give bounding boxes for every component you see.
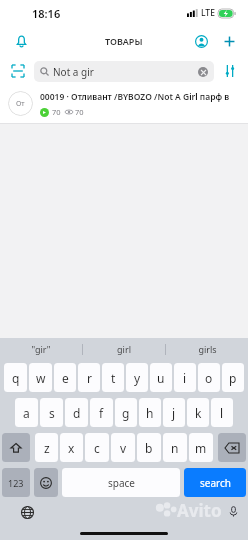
staticText: j [172, 405, 176, 421]
button[interactable]: Clear [198, 67, 208, 77]
button[interactable]: Filters [220, 61, 240, 81]
staticText: m [195, 440, 207, 456]
staticText: z [44, 440, 50, 456]
staticText: LTE [201, 7, 215, 19]
staticText: s [49, 405, 55, 421]
staticText: b [145, 440, 153, 456]
staticText: От [16, 99, 25, 109]
button[interactable]: Notifications [8, 28, 34, 54]
button[interactable]: Voice input [224, 502, 242, 520]
button[interactable]: girls [166, 338, 248, 360]
staticText: r [87, 370, 92, 386]
button[interactable]: v [111, 433, 135, 462]
button[interactable]: girl [83, 338, 165, 360]
button[interactable]: o [198, 363, 220, 392]
staticText: girl [117, 343, 131, 355]
staticText: 70 [75, 107, 84, 117]
staticText: e [62, 370, 69, 386]
button[interactable]: u [150, 363, 172, 392]
button[interactable]: Backspace [218, 433, 246, 462]
button[interactable]: m [189, 433, 213, 462]
button[interactable]: x [60, 433, 83, 462]
button[interactable]: q [4, 363, 27, 392]
button[interactable]: Not a gir [34, 61, 214, 82]
button[interactable]: e [54, 363, 76, 392]
staticText: t [111, 370, 116, 386]
staticText: 123 [8, 477, 24, 489]
button[interactable]: Change language [18, 503, 36, 521]
button[interactable]: От [0, 86, 248, 123]
button[interactable]: b [137, 433, 161, 462]
button[interactable]: t [102, 363, 124, 392]
staticText: Avito [177, 499, 222, 522]
staticText: ТОВАРЫ [105, 35, 143, 47]
button[interactable]: Scan [8, 61, 28, 81]
button[interactable]: Emoji [34, 468, 58, 497]
button[interactable]: r [78, 363, 100, 392]
button[interactable]: space [62, 468, 180, 497]
staticText: x [68, 440, 75, 456]
staticText: search [200, 476, 231, 490]
staticText: a [23, 405, 30, 421]
button[interactable]: i [174, 363, 196, 392]
staticText: q [12, 370, 20, 386]
staticText: space [108, 476, 135, 490]
button[interactable]: Numbers [2, 468, 30, 497]
staticText: y [134, 370, 141, 386]
button[interactable]: Add [218, 30, 240, 52]
button[interactable]: Shift [2, 433, 30, 462]
button[interactable]: search [184, 468, 246, 497]
staticText: k [195, 405, 202, 421]
staticText: o [205, 370, 213, 386]
staticText: w [36, 370, 46, 386]
staticText: c [94, 440, 100, 456]
button[interactable]: s [40, 398, 63, 427]
staticText: Not a gir [53, 65, 198, 79]
button[interactable]: j [163, 398, 185, 427]
staticText: p [229, 370, 237, 386]
button[interactable]: d [65, 398, 88, 427]
staticText: i [183, 370, 187, 386]
button[interactable]: w [29, 363, 52, 392]
staticText: l [220, 405, 224, 421]
button[interactable]: a [15, 398, 38, 427]
button[interactable]: l [211, 398, 233, 427]
button[interactable]: p [222, 363, 244, 392]
button[interactable]: "gir" [0, 338, 82, 360]
staticText: f [99, 405, 104, 421]
button[interactable]: Profile [190, 30, 212, 52]
staticText: "gir" [31, 343, 51, 355]
staticText: u [157, 370, 165, 386]
staticText: 00019 · Отливант /BYBOZO /Not A Girl пар… [40, 91, 230, 103]
button[interactable]: n [163, 433, 187, 462]
button[interactable]: k [187, 398, 209, 427]
staticText: h [146, 405, 154, 421]
staticText: n [171, 440, 179, 456]
staticText: g [122, 405, 130, 421]
button[interactable]: h [139, 398, 161, 427]
button[interactable]: f [90, 398, 113, 427]
staticText: v [120, 440, 127, 456]
staticText: girls [198, 343, 217, 355]
button[interactable]: c [85, 433, 109, 462]
button[interactable]: z [35, 433, 58, 462]
staticText: d [73, 405, 81, 421]
button[interactable]: y [126, 363, 148, 392]
staticText: 70 [52, 107, 61, 117]
staticText: 18:16 [32, 6, 61, 21]
button[interactable]: g [115, 398, 137, 427]
